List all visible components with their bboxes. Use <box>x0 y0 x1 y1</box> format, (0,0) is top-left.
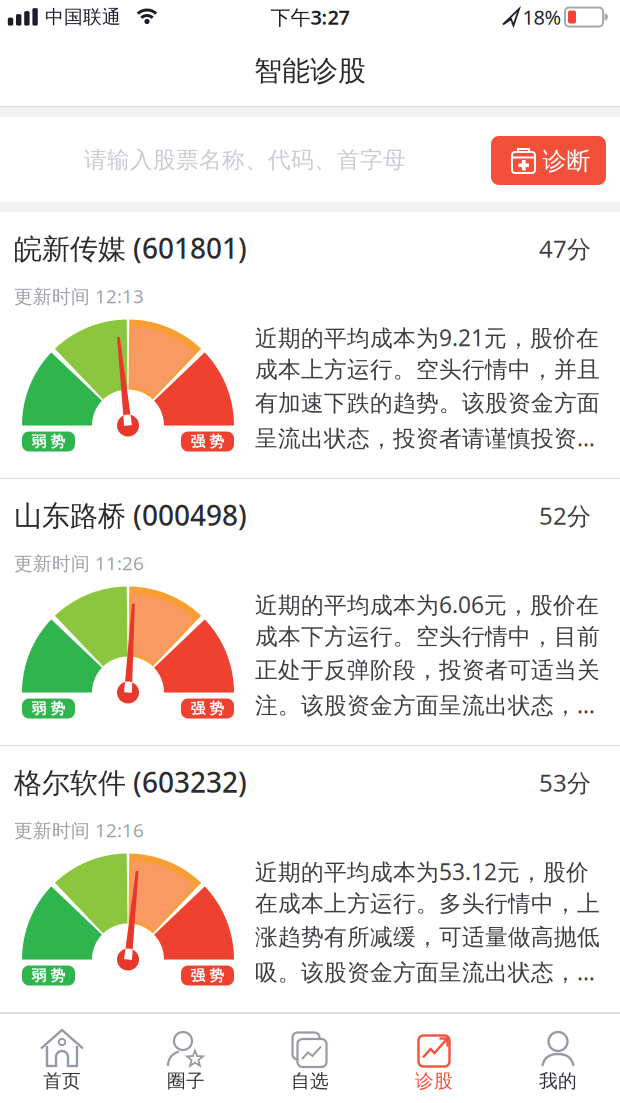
button[interactable]: 圈子 <box>124 1013 248 1103</box>
button[interactable]: 诊断 <box>491 136 606 185</box>
staticText: 诊股 <box>415 1069 453 1092</box>
staticText: 圈子 <box>167 1069 205 1092</box>
staticText: 更新时间 11:26 <box>14 551 144 575</box>
staticText: 吸。该股资金方面呈流出状态，… <box>255 957 595 987</box>
staticText: 47分 <box>539 233 591 264</box>
staticText: 皖新传媒 (601801) <box>14 229 247 267</box>
staticText: 近期的平均成本为6.06元，股价在 <box>255 589 599 620</box>
staticText: 诊断 <box>542 146 590 176</box>
staticText: 山东路桥 (000498) <box>14 496 247 534</box>
staticText: 在成本上方运行。多头行情中，上 <box>255 890 600 918</box>
staticText: 更新时间 12:16 <box>14 818 144 842</box>
staticText: 格尔软件 (603232) <box>14 763 247 801</box>
staticText: 有加速下跌的趋势。该股资金方面 <box>255 389 600 417</box>
button[interactable]: 我的 <box>496 1013 620 1103</box>
staticText: 我的 <box>539 1069 577 1092</box>
button[interactable]: 诊股 <box>372 1013 496 1103</box>
button[interactable]: 自选 <box>248 1013 372 1103</box>
staticText: 更新时间 12:13 <box>14 284 144 308</box>
staticText: 成本上方运行。空头行情中，并且 <box>255 356 600 384</box>
staticText: 注。该股资金方面呈流出状态，… <box>255 690 595 720</box>
staticText: 自选 <box>291 1069 329 1092</box>
staticText: 正处于反弹阶段，投资者可适当关 <box>255 656 600 684</box>
staticText: 弱 势 <box>31 966 65 984</box>
staticText: 弱 势 <box>31 432 65 450</box>
staticText: 下午3:27 <box>270 4 349 30</box>
staticText: 52分 <box>539 500 591 531</box>
staticText: 呈流出状态，投资者请谨慎投资… <box>255 423 595 453</box>
staticText: 近期的平均成本为53.12元，股价 <box>255 856 589 887</box>
staticText: 中国联通 <box>45 5 121 28</box>
staticText: 成本下方运行。空头行情中，目前 <box>255 623 600 651</box>
staticText: 53分 <box>539 767 591 798</box>
button[interactable]: 皖新传媒 (601801) <box>0 212 620 479</box>
button[interactable]: 山东路桥 (000498) <box>0 479 620 746</box>
staticText: 涨趋势有所减缓，可适量做高抛低 <box>255 923 600 951</box>
staticText: 强 势 <box>190 432 224 450</box>
staticText: 首页 <box>43 1069 81 1092</box>
staticText: 18% <box>522 4 561 30</box>
staticText: 近期的平均成本为9.21元，股价在 <box>255 322 599 353</box>
button[interactable]: 首页 <box>0 1013 124 1103</box>
button[interactable]: 格尔软件 (603232) <box>0 746 620 1013</box>
staticText: 智能诊股 <box>254 54 366 88</box>
button[interactable]: 请输入股票名称、代码、首字母 <box>15 130 475 190</box>
staticText: 弱 势 <box>31 699 65 717</box>
staticText: 请输入股票名称、代码、首字母 <box>84 146 406 174</box>
staticText: 强 势 <box>190 699 224 717</box>
staticText: 强 势 <box>190 966 224 984</box>
